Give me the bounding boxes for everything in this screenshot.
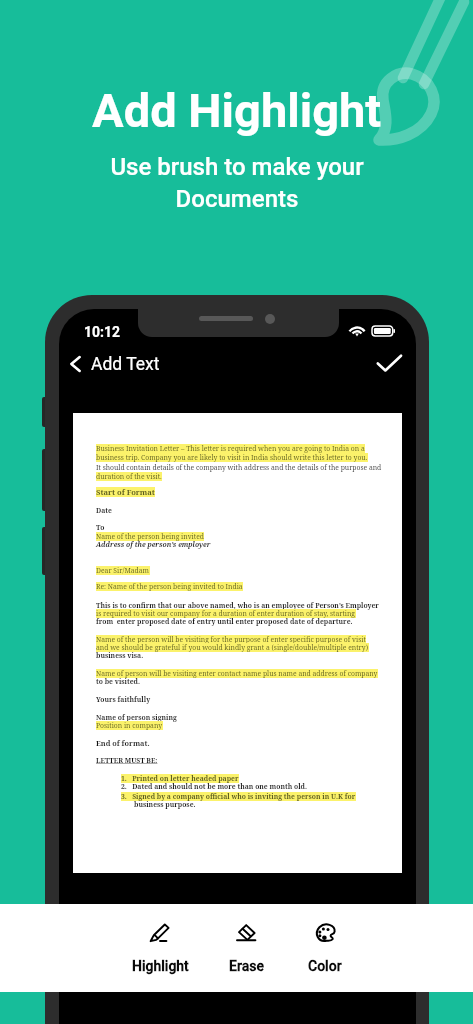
staticText: This is to confirm that our above named,… [96, 601, 379, 610]
staticText: is required to visit our company for a d… [96, 609, 356, 618]
staticText: Yours faithfully [96, 695, 151, 704]
staticText: Re: Name of the person being invited to … [96, 582, 243, 591]
staticText: LETTER MUST BE: [96, 756, 158, 765]
staticText: 3. Signed by a company official who is i… [121, 792, 356, 801]
staticText: Dear Sir/Madam [96, 566, 150, 575]
staticText: To [96, 523, 105, 532]
button[interactable]: Erase [208, 904, 284, 992]
staticText: Date [96, 506, 112, 515]
staticText: Add Text [91, 354, 160, 375]
staticText: Name of the person being invited [96, 532, 204, 541]
staticText: Start of Format [96, 487, 155, 497]
staticText: Use brush to make your Documents [92, 153, 382, 213]
staticText: Color [308, 958, 342, 974]
staticText: 2. Dated and should not be more than one… [121, 782, 307, 791]
button[interactable]: Color [287, 904, 363, 992]
staticText: Position in company [96, 721, 163, 730]
staticText: to be visited. [96, 677, 140, 686]
button[interactable]: Add Text [69, 351, 160, 377]
staticText: business trip. Company you are likely to… [96, 453, 368, 462]
staticText: 1. Printed on letter headed paper [121, 774, 239, 783]
staticText: from enter proposed date of entry until … [96, 617, 353, 626]
staticText: Erase [229, 958, 264, 974]
button[interactable]: Done [375, 353, 403, 374]
staticText: End of format. [96, 738, 150, 748]
staticText: and we should be grateful if you would k… [96, 643, 369, 652]
staticText: Name of person signing [96, 713, 177, 722]
staticText: Name of person will be visiting enter co… [96, 669, 378, 678]
staticText: Name of the person will be visiting for … [96, 635, 366, 644]
staticText: It should contain details of the company… [96, 463, 382, 472]
staticText: business purpose. [134, 800, 196, 809]
staticText: duration of the visit. [96, 472, 162, 481]
button[interactable]: Highlight [122, 904, 198, 992]
staticText: business visa. [96, 651, 144, 660]
staticText: Business Invitation Letter – This letter… [96, 444, 365, 453]
staticText: 10:12 [84, 324, 121, 340]
staticText: Add Highlight [92, 83, 382, 138]
staticText: Highlight [132, 958, 189, 974]
staticText: Address of the person’s employer [96, 540, 211, 549]
